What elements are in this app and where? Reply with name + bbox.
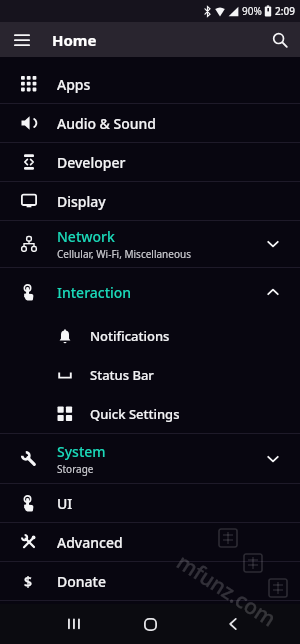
button[interactable]: UI: [0, 484, 300, 522]
staticText: Notifications: [90, 327, 170, 345]
button[interactable]: Apps: [0, 65, 300, 103]
staticText: Home: [52, 30, 97, 50]
staticText: 2:09: [275, 4, 295, 18]
button[interactable]: Display: [0, 182, 300, 220]
button[interactable]: Notifications: [0, 316, 300, 355]
staticText: Network: [57, 227, 115, 246]
staticText: Interaction: [57, 283, 132, 302]
staticText: mfunz.com: [171, 548, 282, 633]
button[interactable]: System: [0, 434, 300, 483]
button[interactable]: [0, 22, 44, 57]
staticText: System: [57, 442, 106, 461]
staticText: Advanced: [57, 533, 123, 552]
button[interactable]: [229, 618, 237, 630]
button[interactable]: Network: [0, 221, 300, 267]
button[interactable]: [260, 22, 300, 57]
staticText: Quick Settings: [90, 405, 180, 423]
button[interactable]: Advanced: [0, 523, 300, 561]
staticText: Audio & Sound: [57, 114, 157, 133]
staticText: UI: [57, 494, 73, 513]
button[interactable]: Audio & Sound: [0, 104, 300, 142]
staticText: Storage: [57, 462, 94, 476]
staticText: Cellular, Wi-Fi, Miscellaneous: [57, 247, 191, 261]
staticText: Display: [57, 192, 106, 211]
staticText: $: [24, 572, 33, 591]
button[interactable]: [68, 618, 81, 630]
button[interactable]: Quick Settings: [0, 394, 300, 433]
button[interactable]: Developer: [0, 143, 300, 181]
staticText: Developer: [57, 153, 126, 172]
button[interactable]: $: [0, 562, 300, 600]
staticText: 90%: [242, 4, 262, 18]
staticText: Donate: [57, 572, 106, 591]
staticText: Apps: [57, 75, 91, 94]
button[interactable]: [144, 618, 157, 631]
button[interactable]: Status Bar: [0, 355, 300, 394]
button[interactable]: Interaction: [0, 268, 300, 316]
staticText: Status Bar: [90, 366, 154, 384]
